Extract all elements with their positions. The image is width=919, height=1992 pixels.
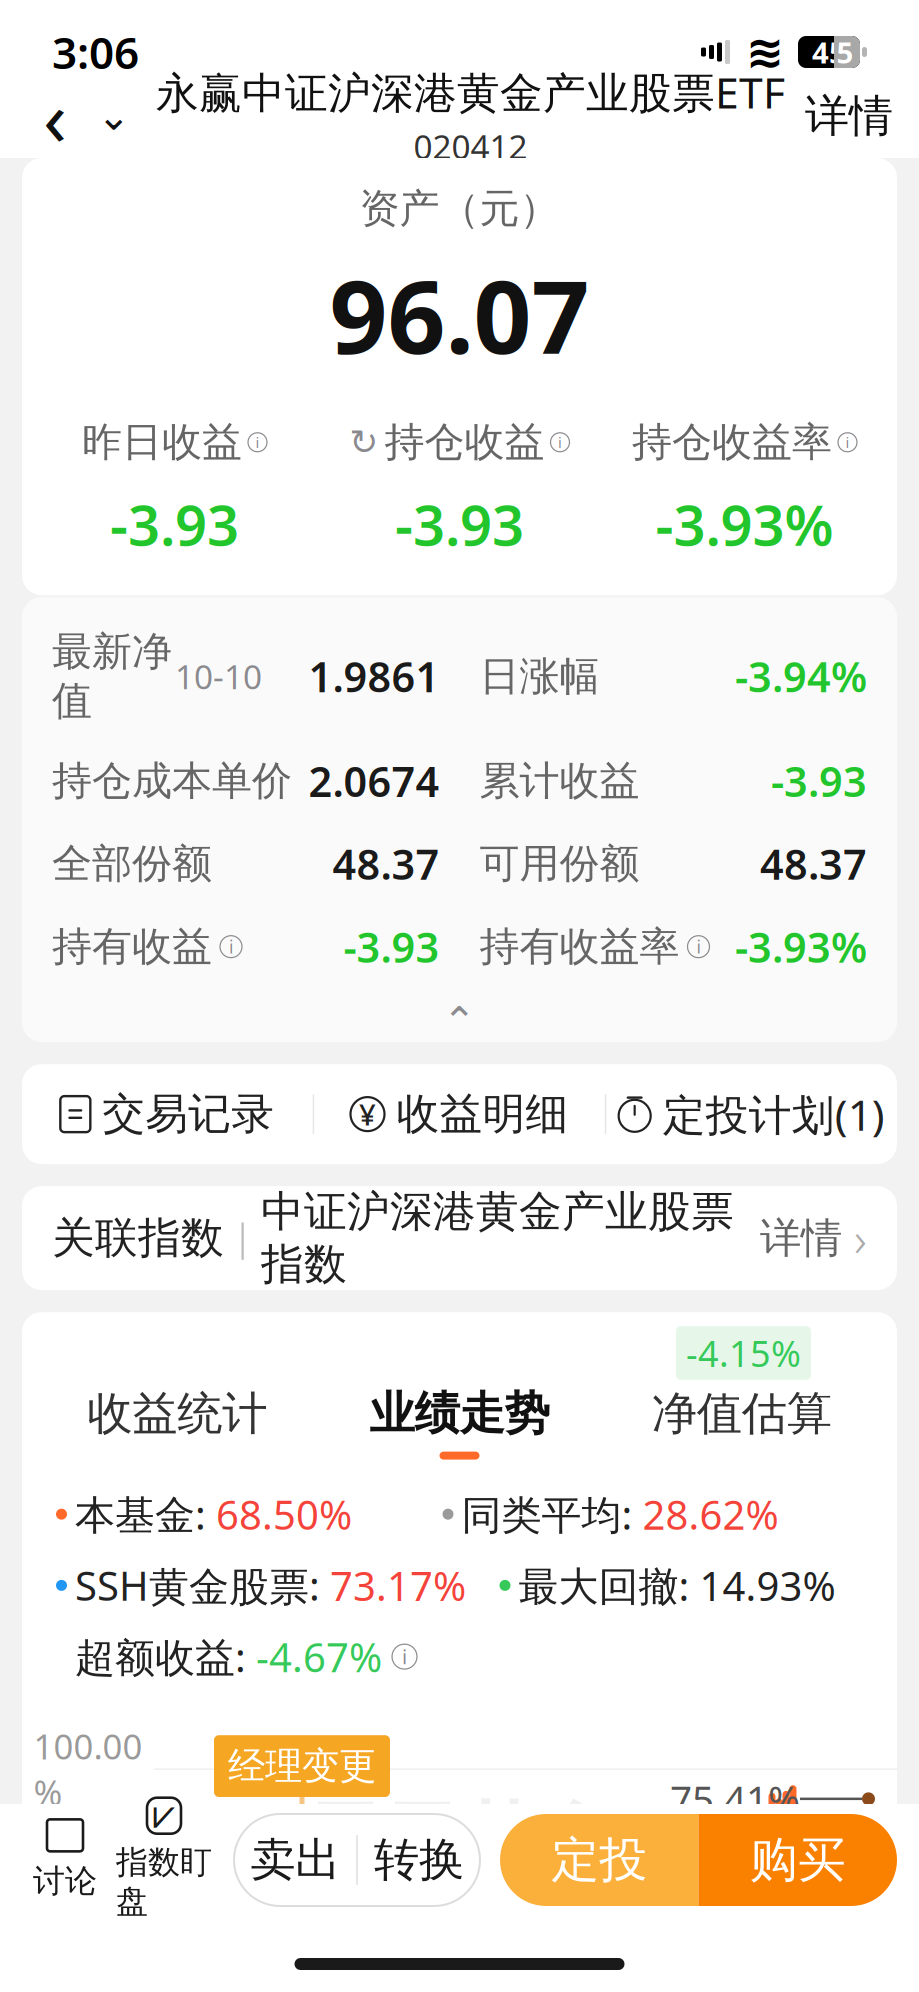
staticText: -4.67% xyxy=(256,1630,382,1683)
staticText: 净值估算 xyxy=(652,1386,832,1442)
staticText: 经理变更 xyxy=(228,1743,376,1789)
staticText: 全部份额 xyxy=(52,839,212,888)
staticText: 75.41% xyxy=(670,1773,800,1824)
button[interactable]: 转换 xyxy=(358,1814,480,1906)
staticText: 73.17% xyxy=(330,1559,466,1612)
staticText: i xyxy=(402,1643,407,1670)
staticText: 业绩走势 xyxy=(369,1386,549,1442)
staticText: -4.15% xyxy=(686,1329,801,1377)
staticText: 超额收益: xyxy=(75,1630,256,1683)
staticText: SSH黄金股票: xyxy=(75,1559,330,1612)
button[interactable]: Back xyxy=(22,79,88,153)
staticText: 100.00% xyxy=(33,1723,142,1815)
staticText: ｜ xyxy=(224,1215,261,1261)
staticText: 日涨幅 xyxy=(479,652,599,701)
staticText: -3.93% xyxy=(655,487,833,561)
button[interactable]: 净值估算 xyxy=(601,1386,883,1460)
button[interactable]: 详情 xyxy=(801,79,897,153)
staticText: 同类平均: xyxy=(461,1488,642,1541)
staticText: 交易记录 xyxy=(102,1088,274,1140)
staticText: 转换 xyxy=(374,1832,464,1888)
staticText: 购买 xyxy=(750,1830,846,1889)
staticText: 中证沪深港黄金产业股票指数 xyxy=(261,1186,734,1290)
staticText: i xyxy=(558,432,562,452)
staticText: 48.37 xyxy=(760,836,867,891)
staticText: 68.50% xyxy=(216,1488,352,1541)
staticText: i xyxy=(255,432,259,452)
staticText: -3.93 xyxy=(343,919,439,974)
button[interactable]: ¥ xyxy=(314,1064,605,1164)
staticText: 45 xyxy=(812,32,846,71)
staticText: 持有收益 xyxy=(52,922,212,971)
button[interactable]: 交易记录 xyxy=(22,1064,313,1164)
staticText: 68.75% xyxy=(29,1823,147,1869)
button[interactable]: 讨论 xyxy=(22,1819,108,1901)
staticText: 定投 xyxy=(551,1830,647,1889)
button[interactable]: 业绩走势 xyxy=(318,1386,601,1460)
staticText: 2.0674 xyxy=(308,753,439,808)
staticText: 持仓成本单价 xyxy=(52,756,292,805)
button[interactable]: ⩗ xyxy=(108,1799,220,1921)
staticText: ⌃ xyxy=(442,998,476,1044)
button[interactable]: 购买 xyxy=(698,1814,897,1906)
button[interactable]: 定投 xyxy=(500,1814,698,1906)
staticText: i xyxy=(696,935,700,958)
staticText: › xyxy=(854,1206,867,1270)
staticText: ¥ xyxy=(359,1095,376,1134)
staticText: ⌄ xyxy=(97,93,131,139)
staticText: i xyxy=(229,935,233,958)
staticText: 可用份额 xyxy=(479,839,639,888)
staticText: ≋ xyxy=(746,26,784,78)
staticText: 收益明细 xyxy=(396,1088,568,1140)
staticText: 最大回撤: xyxy=(518,1559,699,1612)
button[interactable]: More xyxy=(88,79,140,153)
staticText: ‹ xyxy=(43,65,67,167)
staticText: 10-10 xyxy=(175,654,262,698)
button[interactable]: Collapse xyxy=(22,1000,897,1042)
staticText: 指数盯盘 xyxy=(116,1843,212,1921)
staticText: 最新净值 xyxy=(52,627,172,725)
staticText: 永赢中证沪深港黄金产业股票ETF xyxy=(156,63,785,120)
staticText: -3.93 xyxy=(771,753,867,808)
staticText: 资产（元） xyxy=(359,184,559,233)
staticText: 96.07 xyxy=(329,247,589,382)
button[interactable]: 卖出 xyxy=(234,1814,356,1906)
staticText: 持仓收益率 xyxy=(632,418,832,467)
staticText: -3.94% xyxy=(735,649,867,704)
staticText: -3.93 xyxy=(110,487,239,561)
staticText: i xyxy=(845,432,849,452)
staticText: -3.93% xyxy=(735,919,867,974)
staticText: 详情 xyxy=(760,1213,842,1263)
staticText: 持有收益率 xyxy=(479,922,679,971)
button[interactable] xyxy=(606,1064,897,1164)
staticText: -9.93% xyxy=(288,1904,408,1955)
staticText: ↻ xyxy=(349,423,378,462)
button[interactable]: 关联指数 xyxy=(22,1186,897,1290)
staticText: 本基金: xyxy=(75,1488,216,1541)
staticText: 14.93% xyxy=(699,1559,835,1612)
staticText: 持仓收益 xyxy=(384,418,544,467)
staticText: -3.93 xyxy=(395,487,524,561)
staticText: 3:06 xyxy=(52,23,139,81)
staticText: 收益统计 xyxy=(87,1386,267,1442)
staticText: 天天基金 xyxy=(305,1792,613,1887)
staticText: 关联指数 xyxy=(52,1212,224,1264)
button[interactable]: 收益统计 xyxy=(36,1386,318,1460)
staticText: ⩗ xyxy=(152,1796,175,1835)
staticText: 1.9861 xyxy=(308,649,439,704)
staticText: 020412 xyxy=(413,124,527,168)
staticText: 5 xyxy=(836,32,853,71)
staticText: 定投计划(1) xyxy=(663,1086,885,1142)
staticText: 累计收益 xyxy=(479,756,639,805)
staticText: 48.37 xyxy=(332,836,439,891)
staticText: 详情 xyxy=(805,89,893,143)
staticText: 37.50% xyxy=(29,1877,147,1923)
staticText: 28.62% xyxy=(642,1488,778,1541)
staticText: 昨日收益 xyxy=(82,418,242,467)
staticText: 卖出 xyxy=(250,1832,340,1888)
staticText: 讨论 xyxy=(33,1861,97,1901)
